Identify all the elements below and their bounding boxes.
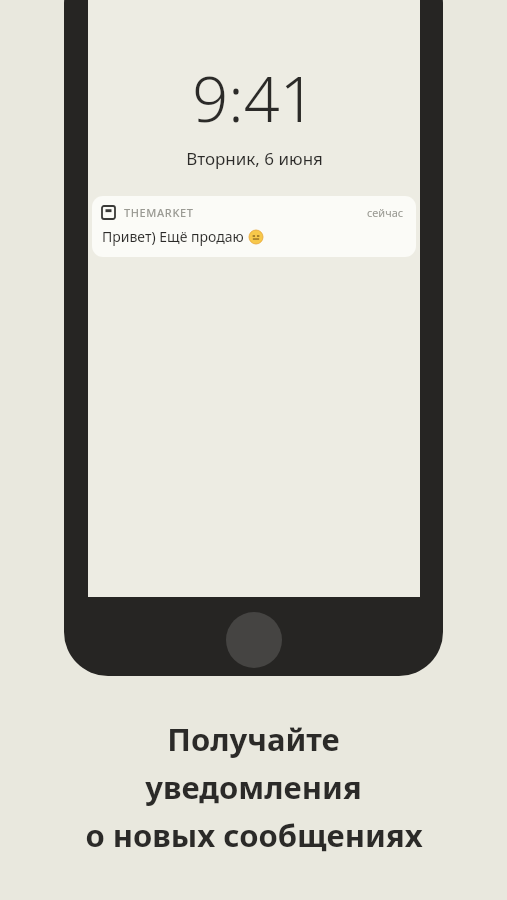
button[interactable]: Home	[226, 612, 282, 668]
button[interactable]: App icon	[92, 196, 416, 257]
staticText: THEMARKET	[124, 205, 194, 220]
staticText: Вторник, 6 июня	[186, 147, 323, 170]
staticText: о новых сообщениях	[85, 814, 423, 856]
staticText: уведомления	[145, 766, 362, 808]
staticText: Привет) Ещё продаю	[102, 227, 244, 246]
staticText: сейчас	[367, 205, 404, 220]
staticText: Получайте	[167, 718, 340, 760]
other: App icon	[102, 206, 115, 219]
staticText: 9:41	[192, 55, 316, 141]
